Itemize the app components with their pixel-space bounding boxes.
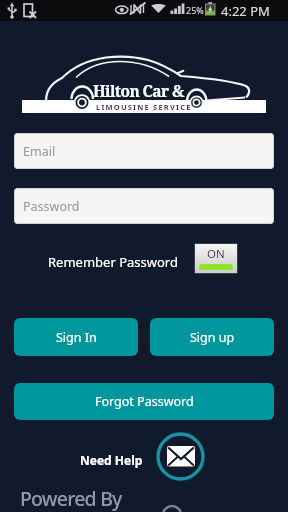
staticText: Hilton Car &: [93, 80, 184, 101]
button[interactable]: Email: [14, 133, 274, 169]
button[interactable]: [157, 433, 204, 480]
staticText: Forgot Password: [95, 393, 194, 410]
button[interactable]: Password: [14, 188, 274, 224]
staticText: Remember Password: [48, 253, 178, 271]
staticText: LIMOUSINE SERVICE: [96, 102, 192, 112]
staticText: Need Help: [80, 452, 143, 468]
staticText: Sign up: [190, 329, 235, 346]
button[interactable]: ON: [194, 243, 238, 274]
staticText: Password: [23, 198, 80, 215]
staticText: 25%: [186, 4, 204, 16]
staticText: ON: [207, 246, 225, 262]
staticText: Powered By: [20, 485, 122, 512]
staticText: Sign In: [56, 329, 97, 346]
staticText: Email: [23, 143, 56, 160]
button[interactable]: Sign In: [14, 318, 138, 356]
staticText: 4:22 PM: [221, 2, 270, 20]
button[interactable]: Sign up: [150, 318, 274, 356]
button[interactable]: Forgot Password: [14, 383, 274, 420]
